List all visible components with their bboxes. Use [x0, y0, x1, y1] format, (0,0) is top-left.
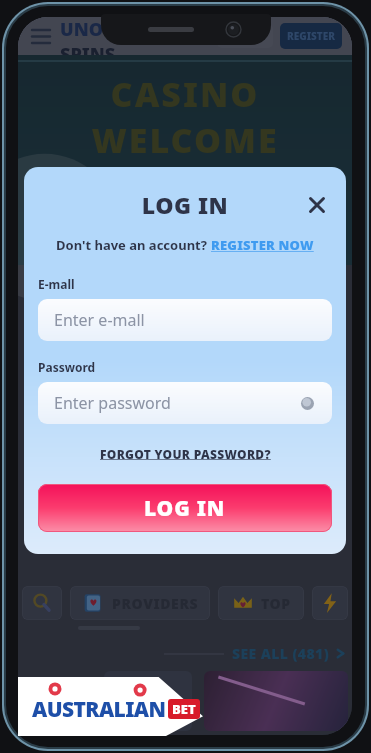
button[interactable]: Show password: [296, 392, 318, 414]
staticText: Don't have an account?: [56, 236, 211, 254]
button[interactable]: REGISTER: [280, 23, 342, 49]
staticText: SEE ALL (481): [232, 644, 330, 663]
staticText: LOG IN: [38, 189, 332, 220]
button[interactable]: TOP: [218, 586, 304, 620]
staticText: AUSTRALIAN: [32, 695, 166, 724]
staticText: REGISTER: [287, 29, 335, 43]
staticText: CASINO WELCOME: [18, 71, 352, 163]
staticText: E-mall: [38, 276, 75, 292]
staticText: Enter e-mall: [54, 309, 145, 331]
staticText: Enter password: [54, 392, 171, 414]
button[interactable]: SEE ALL (481): [232, 644, 346, 663]
button[interactable]: REGISTER NOW: [211, 236, 314, 254]
button[interactable]: [22, 586, 62, 620]
button[interactable]: Menu: [28, 23, 54, 49]
staticText: PROVIDERS: [112, 594, 199, 613]
button[interactable]: Enter e-mall: [38, 299, 332, 341]
button[interactable]: PROVIDERS: [70, 586, 210, 620]
button[interactable]: [312, 586, 348, 620]
staticText: REGISTER NOW: [211, 236, 314, 254]
staticText: UNO: [60, 17, 103, 42]
button[interactable]: LOG IN: [217, 24, 273, 48]
staticText: TOP: [261, 594, 291, 613]
staticText: BONUS: [18, 163, 352, 242]
staticText: BET: [172, 700, 196, 718]
button[interactable]: FORGOT YOUR PASSWORD?: [100, 446, 271, 462]
button[interactable]: Close: [302, 190, 332, 220]
staticText: SPINS: [60, 42, 116, 55]
button[interactable]: Enter password: [38, 382, 332, 424]
staticText: Password: [38, 359, 96, 375]
button[interactable]: LOG IN: [38, 484, 332, 532]
staticText: FORGOT YOUR PASSWORD?: [100, 446, 271, 462]
staticText: LOG IN: [227, 29, 264, 43]
staticText: LOG IN: [144, 494, 226, 523]
